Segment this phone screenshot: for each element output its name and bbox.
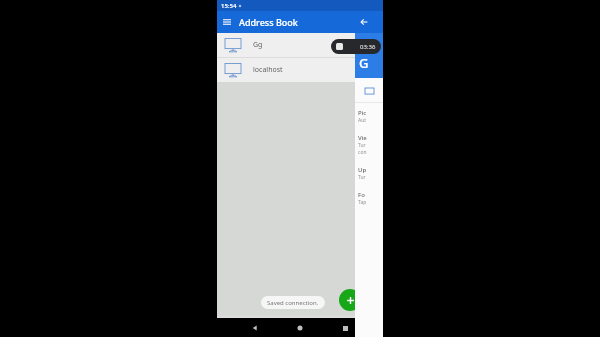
- button[interactable]: Stop screen recording: [331, 39, 381, 54]
- staticText: Tur: [358, 142, 366, 149]
- staticText: Tap: [358, 199, 367, 206]
- staticText: Gg: [253, 40, 263, 50]
- button[interactable]: localhost: [217, 58, 383, 82]
- staticText: Saved connection.: [267, 299, 319, 307]
- button[interactable]: Pic: [355, 103, 383, 128]
- button[interactable]: Home: [293, 321, 307, 335]
- button[interactable]: Navigate up: [358, 16, 370, 28]
- button[interactable]: Recent apps: [338, 321, 352, 335]
- button[interactable]: Back: [248, 321, 262, 335]
- staticText: Up: [358, 166, 367, 174]
- staticText: Pic: [358, 109, 367, 117]
- button[interactable]: Up: [355, 160, 383, 185]
- staticText: Aut: [358, 117, 367, 124]
- staticText: Address Book: [239, 16, 298, 28]
- staticText: Fo: [358, 191, 365, 199]
- staticText: G: [359, 54, 369, 72]
- staticText: 15:54: [221, 2, 237, 10]
- staticText: 03:36: [360, 43, 376, 51]
- button[interactable]: Gg: [217, 33, 383, 57]
- staticText: con: [358, 149, 367, 156]
- staticText: Tur: [358, 174, 366, 181]
- button[interactable]: Add connection: [339, 289, 361, 311]
- button[interactable]: Open navigation menu: [220, 15, 234, 29]
- button[interactable]: Fo: [355, 185, 383, 210]
- button[interactable]: Saved connection.: [261, 296, 325, 309]
- button[interactable]: Vie: [355, 128, 383, 160]
- staticText: localhost: [253, 65, 283, 75]
- staticText: Vie: [358, 134, 367, 142]
